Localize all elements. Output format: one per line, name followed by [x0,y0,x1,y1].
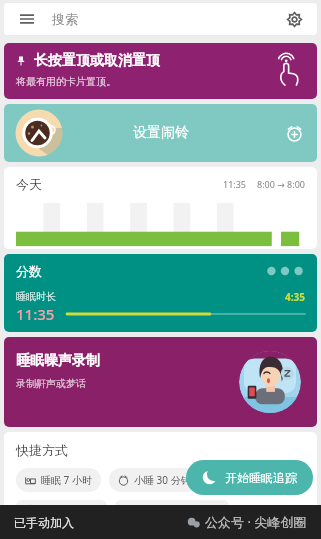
staticText: 分数 [16,263,42,279]
staticText: 搜索 [52,11,78,27]
button[interactable]: Add alarm [283,122,305,144]
staticText: 已手动加入 [14,515,74,530]
staticText: 睡眠时长 [16,290,56,303]
staticText: 小睡 30 分钟 [134,473,191,487]
staticText: 4:35 [285,290,305,304]
staticText: 快捷方式 [16,442,68,458]
staticText: 录制鼾声或梦话 [16,377,86,390]
button[interactable]: 开始睡眠追踪 [186,460,313,495]
staticText: 公众号 · 尖峰创圈 [205,513,307,531]
staticText: 小睡 30 分钟 [233,473,290,487]
button[interactable]: 分数 [4,254,317,332]
button[interactable]: 手动添加睡眠记录 [115,500,229,512]
button[interactable]: 睡眠噪声录制 [4,337,317,427]
staticText: 开始睡眠追踪 [225,470,297,485]
staticText: 11:35 [16,304,55,323]
button[interactable]: 睡眠 7 小时 [16,468,101,492]
staticText: 设置闹铃 [133,124,189,142]
staticText: 今天 [16,176,42,192]
staticText: 8:00 → 8:00 [257,178,305,190]
staticText: 长按置顶或取消置顶 [34,52,160,70]
staticText: 将最有用的卡片置顶。 [16,75,116,88]
staticText: 睡眠 7 小时 [41,473,92,487]
button[interactable]: 小睡 30 分钟 [16,500,107,512]
button[interactable]: 小睡 30 分钟 [109,468,200,492]
button[interactable]: 今天 [4,167,317,249]
staticText: 11:35 [223,178,247,190]
button[interactable]: 小睡 30 分钟 [208,468,299,492]
staticText: 睡眠噪声录制 [16,352,100,370]
button[interactable]: Menu [16,8,38,30]
button[interactable]: 设置闹铃 [4,104,317,162]
button[interactable]: Settings [283,8,305,30]
button[interactable]: 长按置顶或取消置顶 [4,43,317,99]
